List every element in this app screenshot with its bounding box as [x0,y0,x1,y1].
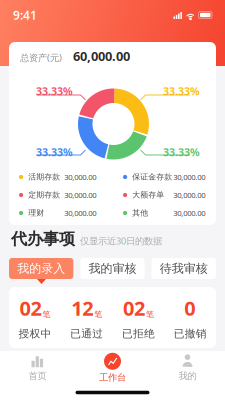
staticText: 其他 [132,208,148,218]
button[interactable]: 我的审核 [80,258,145,279]
button[interactable]: 首页 [0,351,75,385]
staticText: 33.33% [163,145,200,159]
staticText: 大额存单 [132,190,164,200]
staticText: 授权中 [18,327,51,340]
staticText: 理财 [28,208,44,218]
staticText: 活期存款 [28,172,60,182]
staticText: 30,000.00 [64,172,96,182]
staticText: 33.33% [36,145,73,159]
staticText: 0 [184,295,195,321]
staticText: 30,000.00 [173,172,205,182]
staticText: 工作台 [99,372,126,383]
staticText: 我的录入 [17,261,65,276]
staticText: 仅显示近30日的数据 [80,235,162,247]
staticText: 33.33% [36,84,73,98]
staticText: 30,000.00 [173,208,205,218]
staticText: 笔 [94,309,102,319]
button[interactable]: 我的录入 [9,258,73,279]
staticText: 已通过 [70,327,103,340]
staticText: 33.33% [163,84,200,98]
staticText: 笔 [42,309,50,319]
staticText: 我的 [178,370,196,382]
staticText: 30,000.00 [173,190,205,200]
staticText: 12 [71,295,93,321]
staticText: 代办事项 [11,229,75,249]
staticText: 已拒绝 [122,327,155,340]
button[interactable]: 工作台 [75,351,150,385]
staticText: 待我审核 [160,261,208,276]
staticText: 首页 [28,370,46,382]
staticText: 已撤销 [174,327,207,340]
staticText: 02 [19,295,41,321]
staticText: 60,000.00 [73,47,130,65]
staticText: 30,000.00 [64,190,96,200]
staticText: 定期存款 [28,190,60,200]
staticText: 我的审核 [88,261,136,276]
staticText: 02 [123,295,145,321]
staticText: 30,000.00 [64,208,96,218]
staticText: 笔 [146,309,154,319]
button[interactable]: 待我审核 [152,258,216,279]
staticText: 总资产(元) [20,51,62,64]
staticText: 保证金存款 [132,172,172,182]
button[interactable]: 我的 [150,351,225,385]
staticText: 9:41 [13,7,37,23]
